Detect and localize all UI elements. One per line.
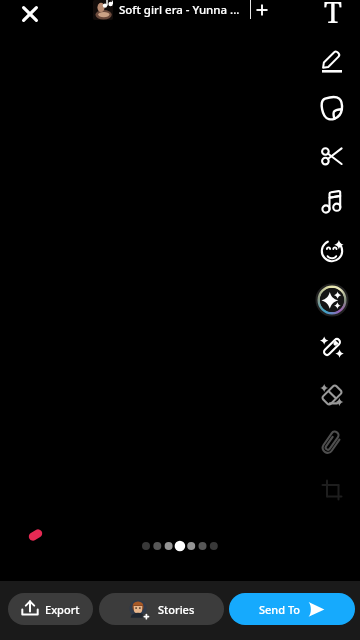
button[interactable]: AI effects [314, 282, 350, 318]
button[interactable]: Music [314, 185, 350, 221]
button[interactable]: Draw [314, 42, 350, 78]
button[interactable]: Text [314, 0, 350, 30]
staticText: Soft girl era - Yunna ... [119, 2, 240, 18]
button[interactable]: Send To [229, 593, 355, 625]
staticText: Send To [259, 602, 301, 617]
button[interactable]: Erase [314, 377, 350, 413]
button[interactable]: Export [8, 593, 93, 625]
staticText: Stories [158, 602, 195, 617]
staticText: Export [45, 602, 80, 617]
staticText: T [324, 0, 342, 28]
button[interactable]: Attach link [314, 425, 350, 461]
button[interactable]: Emoji [314, 233, 350, 269]
button[interactable]: Close [17, 1, 43, 27]
button[interactable]: Sticker [314, 90, 350, 126]
button[interactable]: Enhance [314, 329, 350, 365]
button[interactable]: Crop [314, 472, 350, 508]
button[interactable]: Add music [252, 0, 272, 20]
button[interactable]: Soft girl era - Yunna ... [93, 0, 240, 20]
button[interactable]: Cut [314, 138, 350, 174]
button[interactable]: Stories [99, 593, 224, 625]
